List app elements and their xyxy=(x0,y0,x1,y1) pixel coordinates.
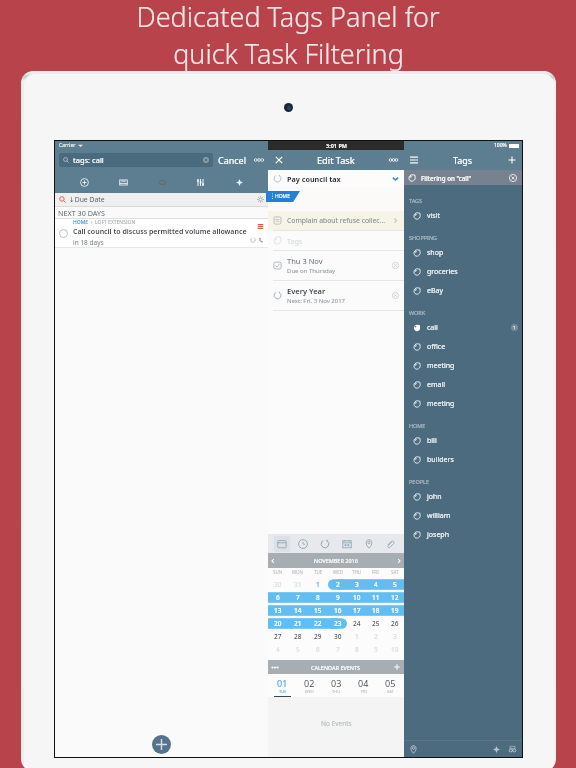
button[interactable]: Sort xyxy=(492,745,501,754)
button[interactable]: meeting xyxy=(404,394,522,413)
button[interactable]: 23 xyxy=(328,617,347,630)
button[interactable]: 24 xyxy=(347,617,366,630)
button[interactable]: 9 xyxy=(328,591,347,604)
button[interactable]: Pay council tax xyxy=(268,170,404,187)
button[interactable]: Add task xyxy=(152,735,171,754)
button[interactable]: Add xyxy=(74,172,94,192)
staticText: NOVEMBER 2016 xyxy=(314,557,358,564)
staticText: 4 xyxy=(276,645,280,654)
button[interactable]: Thu 3 Nov xyxy=(268,251,404,280)
button[interactable]: william xyxy=(404,506,522,525)
button[interactable]: 14 xyxy=(288,604,308,617)
button[interactable]: Complain about refuse collec... xyxy=(268,211,404,230)
button[interactable]: 04 xyxy=(350,674,377,697)
button[interactable]: 29 xyxy=(308,630,328,643)
staticText: email xyxy=(427,380,446,390)
button[interactable]: 01 xyxy=(268,674,296,697)
button[interactable]: 6 xyxy=(268,591,288,604)
button[interactable]: 7 xyxy=(288,591,308,604)
button[interactable]: 6 xyxy=(308,643,328,656)
button[interactable]: Hide xyxy=(152,172,172,192)
button[interactable]: john xyxy=(404,487,522,506)
button[interactable]: 1 xyxy=(347,630,366,643)
button[interactable]: Options xyxy=(271,664,279,671)
button[interactable]: Options xyxy=(508,745,517,754)
button[interactable]: 11 xyxy=(366,591,385,604)
button[interactable]: Inbox xyxy=(113,172,133,192)
button[interactable]: 2 xyxy=(366,630,385,643)
button[interactable]: meeting xyxy=(404,356,522,375)
button[interactable]: Calendar xyxy=(274,536,290,552)
button[interactable]: 8 xyxy=(347,643,366,656)
button[interactable]: Location xyxy=(409,745,418,754)
button[interactable]: Date xyxy=(339,536,355,552)
button[interactable]: 10 xyxy=(347,591,366,604)
button[interactable]: Tags xyxy=(268,231,404,250)
button[interactable]: 18 xyxy=(366,604,385,617)
button[interactable]: shop xyxy=(404,243,522,262)
button[interactable]: 13 xyxy=(268,604,288,617)
button[interactable]: 30 xyxy=(328,630,347,643)
button[interactable]: HOME xyxy=(266,191,300,202)
button[interactable]: 22 xyxy=(308,617,328,630)
button[interactable]: 8 xyxy=(308,591,328,604)
staticText: 13 xyxy=(274,606,282,615)
button[interactable]: Previous month xyxy=(268,556,278,566)
button[interactable]: call xyxy=(404,318,522,337)
button[interactable]: 19 xyxy=(385,604,404,617)
button[interactable]: builders xyxy=(404,450,522,469)
button[interactable]: 05 xyxy=(377,674,404,697)
button[interactable]: 20 xyxy=(268,617,288,630)
button[interactable]: 27 xyxy=(268,630,288,643)
button[interactable]: visit xyxy=(404,206,522,225)
button[interactable]: 15 xyxy=(308,604,328,617)
button[interactable]: 2 xyxy=(328,578,347,591)
button[interactable]: HOME xyxy=(55,219,268,247)
button[interactable]: email xyxy=(404,375,522,394)
button[interactable]: 17 xyxy=(347,604,366,617)
button[interactable]: 9 xyxy=(366,643,385,656)
button[interactable]: Menu xyxy=(409,155,419,165)
button[interactable]: More xyxy=(389,156,398,164)
button[interactable]: Filtering on "call" xyxy=(404,170,522,185)
button[interactable]: 5 xyxy=(288,643,308,656)
button[interactable]: More xyxy=(254,156,264,164)
button[interactable]: Attach xyxy=(382,536,398,552)
button[interactable]: 12 xyxy=(385,591,404,604)
button[interactable]: 03 xyxy=(323,674,350,697)
button[interactable]: 10 xyxy=(385,643,404,656)
button[interactable]: Location xyxy=(361,536,377,552)
button[interactable]: Filter xyxy=(190,172,210,192)
button[interactable]: tags: call xyxy=(59,153,213,167)
button[interactable]: 31 xyxy=(288,578,308,591)
button[interactable]: 5 xyxy=(385,578,404,591)
button[interactable]: 30 xyxy=(268,578,288,591)
button[interactable]: Cancel xyxy=(217,154,248,166)
button[interactable]: 4 xyxy=(268,643,288,656)
button[interactable]: Every Year xyxy=(268,281,404,310)
button[interactable]: 21 xyxy=(288,617,308,630)
button[interactable]: Magic xyxy=(229,172,249,192)
button[interactable]: Next month xyxy=(394,556,404,566)
button[interactable]: 16 xyxy=(328,604,347,617)
button[interactable]: 1 xyxy=(308,578,328,591)
button[interactable]: Alarm xyxy=(295,536,311,552)
button[interactable]: Add event xyxy=(393,663,401,671)
button[interactable]: joseph xyxy=(404,525,522,544)
button[interactable]: 02 xyxy=(296,674,323,697)
button[interactable]: Close xyxy=(274,155,284,165)
button[interactable]: bill xyxy=(404,431,522,450)
button[interactable]: eBay xyxy=(404,281,522,300)
button[interactable]: 26 xyxy=(385,617,404,630)
button[interactable]: groceries xyxy=(404,262,522,281)
button[interactable]: 3 xyxy=(347,578,366,591)
button[interactable]: office xyxy=(404,337,522,356)
button[interactable]: 7 xyxy=(328,643,347,656)
button[interactable]: Repeat xyxy=(317,536,333,552)
button[interactable]: 25 xyxy=(366,617,385,630)
button[interactable]: Add tag xyxy=(507,155,517,165)
staticText: Call council to discuss permitted volume… xyxy=(73,227,247,237)
button[interactable]: 4 xyxy=(366,578,385,591)
button[interactable]: 28 xyxy=(288,630,308,643)
button[interactable]: 3 xyxy=(385,630,404,643)
